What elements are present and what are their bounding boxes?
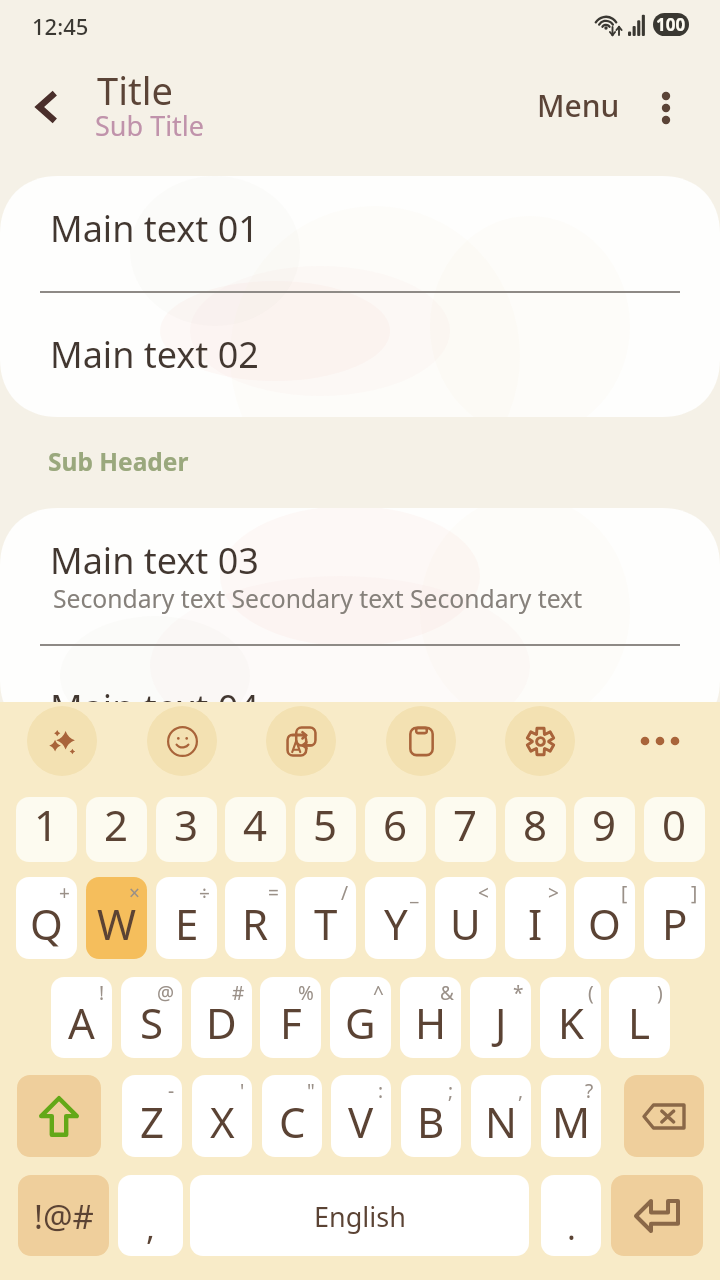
button[interactable]: L [609, 977, 670, 1058]
button[interactable]: 9 [574, 797, 635, 862]
button[interactable]: O [574, 877, 635, 959]
button[interactable]: !@# [18, 1175, 109, 1256]
button[interactable]: Menu [523, 77, 634, 134]
staticText: + [59, 880, 70, 906]
button[interactable]: Main text 03 [0, 508, 720, 645]
button[interactable]: Main text 02 [0, 292, 720, 417]
button[interactable]: B [401, 1075, 461, 1157]
button[interactable]: V [331, 1075, 391, 1157]
staticText: Main text 04 [50, 683, 259, 732]
staticText: L [628, 994, 651, 1051]
staticText: Main text 02 [50, 330, 259, 379]
staticText: = [268, 880, 279, 906]
staticText: ^ [373, 980, 384, 1006]
staticText: X [210, 1093, 235, 1150]
button[interactable]: P [644, 877, 705, 959]
staticText: [ [621, 880, 628, 906]
staticText: 2 [104, 797, 129, 853]
button[interactable]: English [190, 1175, 529, 1256]
button[interactable]: Main text 01 [0, 176, 720, 291]
button[interactable]: T [295, 877, 356, 959]
staticText: ] [691, 880, 698, 906]
button[interactable]: AI suggestions [27, 706, 97, 776]
button[interactable]: Translate [266, 706, 336, 776]
button[interactable]: Settings [505, 706, 575, 776]
staticText: G [345, 994, 376, 1051]
button[interactable]: 7 [435, 797, 496, 862]
button[interactable]: Y [365, 877, 426, 959]
button[interactable]: U [435, 877, 496, 959]
staticText: T [314, 895, 338, 952]
staticText: 8 [523, 797, 548, 853]
button[interactable]: G [330, 977, 391, 1058]
button[interactable]: X [192, 1075, 252, 1157]
staticText: 100 [656, 13, 686, 36]
staticText: 5 [313, 797, 338, 853]
button[interactable]: , [118, 1175, 183, 1256]
staticText: , [146, 1205, 155, 1250]
staticText: × [129, 880, 140, 906]
button[interactable]: S [121, 977, 182, 1058]
staticText: ÷ [199, 880, 210, 906]
button[interactable]: 4 [225, 797, 286, 862]
button[interactable]: Backspace [624, 1075, 704, 1157]
button[interactable]: I [505, 877, 566, 959]
button[interactable]: Q [16, 877, 77, 959]
button[interactable]: 6 [365, 797, 426, 862]
button[interactable]: Z [122, 1075, 182, 1157]
staticText: V [348, 1093, 374, 1150]
button[interactable]: Emoji [147, 706, 217, 776]
staticText: F [280, 994, 302, 1051]
staticText: O [588, 895, 621, 952]
staticText: 7 [453, 797, 478, 853]
staticText: !@# [34, 1194, 94, 1239]
staticText: P [662, 895, 688, 952]
button[interactable]: 3 [156, 797, 217, 862]
button[interactable]: More options [638, 80, 694, 136]
staticText: D [206, 994, 237, 1051]
button[interactable]: A [51, 977, 112, 1058]
button[interactable]: Back [18, 79, 74, 135]
staticText: I [528, 895, 543, 952]
staticText: 12:45 [32, 11, 89, 41]
button[interactable]: Main text 04 [0, 645, 720, 738]
button[interactable]: H [400, 977, 461, 1058]
staticText: Sub Header [48, 445, 189, 478]
staticText: Z [140, 1093, 165, 1150]
button[interactable]: Enter [611, 1175, 703, 1256]
button[interactable]: 8 [505, 797, 566, 862]
button[interactable]: C [262, 1075, 322, 1157]
button[interactable]: W [86, 877, 147, 959]
staticText: Menu [537, 85, 620, 126]
button[interactable]: R [225, 877, 286, 959]
staticText: & [440, 980, 454, 1006]
staticText: # [232, 980, 245, 1006]
staticText: 3 [174, 797, 199, 853]
button[interactable]: J [470, 977, 531, 1058]
button[interactable]: N [471, 1075, 531, 1157]
staticText: Main text 03 [50, 536, 259, 585]
staticText: ; [448, 1078, 454, 1104]
button[interactable]: 0 [644, 797, 705, 862]
staticText: Q [30, 895, 63, 952]
button[interactable]: D [191, 977, 252, 1058]
button[interactable]: M [541, 1075, 601, 1157]
staticText: B [417, 1093, 445, 1150]
staticText: % [298, 980, 314, 1006]
staticText: K [558, 994, 584, 1051]
button[interactable]: More [625, 706, 695, 776]
button[interactable]: F [260, 977, 321, 1058]
button[interactable]: Clipboard [386, 706, 456, 776]
button[interactable]: 1 [16, 797, 77, 862]
button[interactable]: E [156, 877, 217, 959]
staticText: A [68, 994, 95, 1051]
staticText: 0 [662, 797, 687, 853]
button[interactable]: K [540, 977, 601, 1058]
button[interactable]: 2 [86, 797, 147, 862]
button[interactable]: . [541, 1175, 601, 1256]
staticText: : [378, 1078, 384, 1104]
staticText: R [242, 895, 269, 952]
button[interactable]: Shift [17, 1075, 101, 1157]
staticText: @ [157, 980, 175, 1006]
button[interactable]: 5 [295, 797, 356, 862]
